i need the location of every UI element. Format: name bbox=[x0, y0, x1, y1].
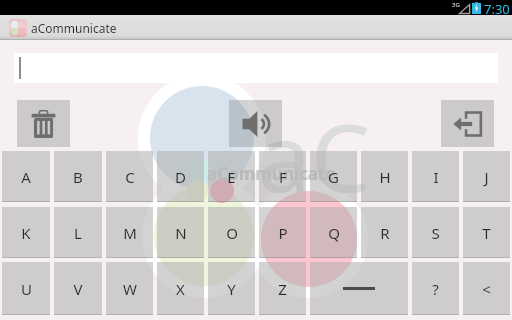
staticText: L bbox=[74, 223, 82, 243]
button[interactable]: K bbox=[2, 207, 50, 258]
button[interactable]: X bbox=[157, 262, 204, 315]
staticText: R bbox=[380, 223, 390, 243]
staticText: G bbox=[328, 167, 339, 187]
button[interactable]: C bbox=[106, 151, 153, 202]
staticText: H bbox=[379, 167, 391, 187]
button[interactable]: L bbox=[54, 207, 102, 258]
staticText: U bbox=[21, 279, 32, 299]
staticText: T bbox=[482, 223, 491, 243]
staticText: aC bbox=[258, 92, 371, 220]
staticText: < bbox=[482, 279, 491, 299]
staticText: 7:30 bbox=[484, 0, 510, 15]
button[interactable]: R bbox=[361, 207, 408, 258]
staticText: E bbox=[227, 167, 236, 187]
staticText: M bbox=[123, 223, 137, 243]
staticText: O bbox=[226, 223, 238, 243]
button[interactable]: Speak bbox=[229, 100, 282, 147]
button[interactable]: ? bbox=[412, 262, 459, 315]
button[interactable] bbox=[310, 262, 408, 315]
staticText: W bbox=[123, 279, 137, 299]
button[interactable]: J bbox=[463, 151, 510, 202]
button[interactable]: U bbox=[2, 262, 50, 315]
staticText: X bbox=[176, 279, 185, 299]
button[interactable]: W bbox=[106, 262, 153, 315]
button[interactable]: E bbox=[208, 151, 255, 202]
button[interactable]: P bbox=[259, 207, 306, 258]
button[interactable]: N bbox=[157, 207, 204, 258]
staticText: B bbox=[73, 167, 83, 187]
button[interactable]: T bbox=[463, 207, 510, 258]
button[interactable]: Y bbox=[208, 262, 255, 315]
staticText: 3G bbox=[452, 1, 460, 9]
staticText: C bbox=[125, 167, 135, 187]
button[interactable]: V bbox=[54, 262, 102, 315]
button[interactable]: A bbox=[2, 151, 50, 202]
button[interactable]: M bbox=[106, 207, 153, 258]
staticText: P bbox=[278, 223, 288, 243]
staticText: Q bbox=[328, 223, 340, 243]
button[interactable]: < bbox=[463, 262, 510, 315]
button[interactable]: Exit bbox=[441, 100, 494, 147]
staticText: aCommunicate bbox=[31, 20, 117, 36]
staticText: S bbox=[431, 223, 440, 243]
staticText: Z bbox=[278, 279, 287, 299]
staticText: V bbox=[73, 279, 83, 299]
button[interactable] bbox=[14, 53, 498, 83]
button[interactable]: I bbox=[412, 151, 459, 202]
button[interactable]: D bbox=[157, 151, 204, 202]
staticText: aCommunicate bbox=[207, 162, 336, 185]
button[interactable]: S bbox=[412, 207, 459, 258]
staticText: J bbox=[484, 167, 489, 187]
staticText: Y bbox=[227, 279, 236, 299]
button[interactable]: Z bbox=[259, 262, 306, 315]
button[interactable]: F bbox=[259, 151, 306, 202]
staticText: ? bbox=[432, 279, 439, 299]
staticText: D bbox=[175, 167, 186, 187]
staticText: F bbox=[279, 167, 287, 187]
staticText: K bbox=[21, 223, 31, 243]
button[interactable]: H bbox=[361, 151, 408, 202]
button[interactable]: Q bbox=[310, 207, 357, 258]
staticText: N bbox=[175, 223, 187, 243]
button[interactable]: Delete bbox=[17, 100, 70, 147]
staticText: A bbox=[21, 167, 31, 187]
button[interactable]: G bbox=[310, 151, 357, 202]
button[interactable]: O bbox=[208, 207, 255, 258]
staticText: I bbox=[433, 167, 439, 187]
button[interactable]: B bbox=[54, 151, 102, 202]
